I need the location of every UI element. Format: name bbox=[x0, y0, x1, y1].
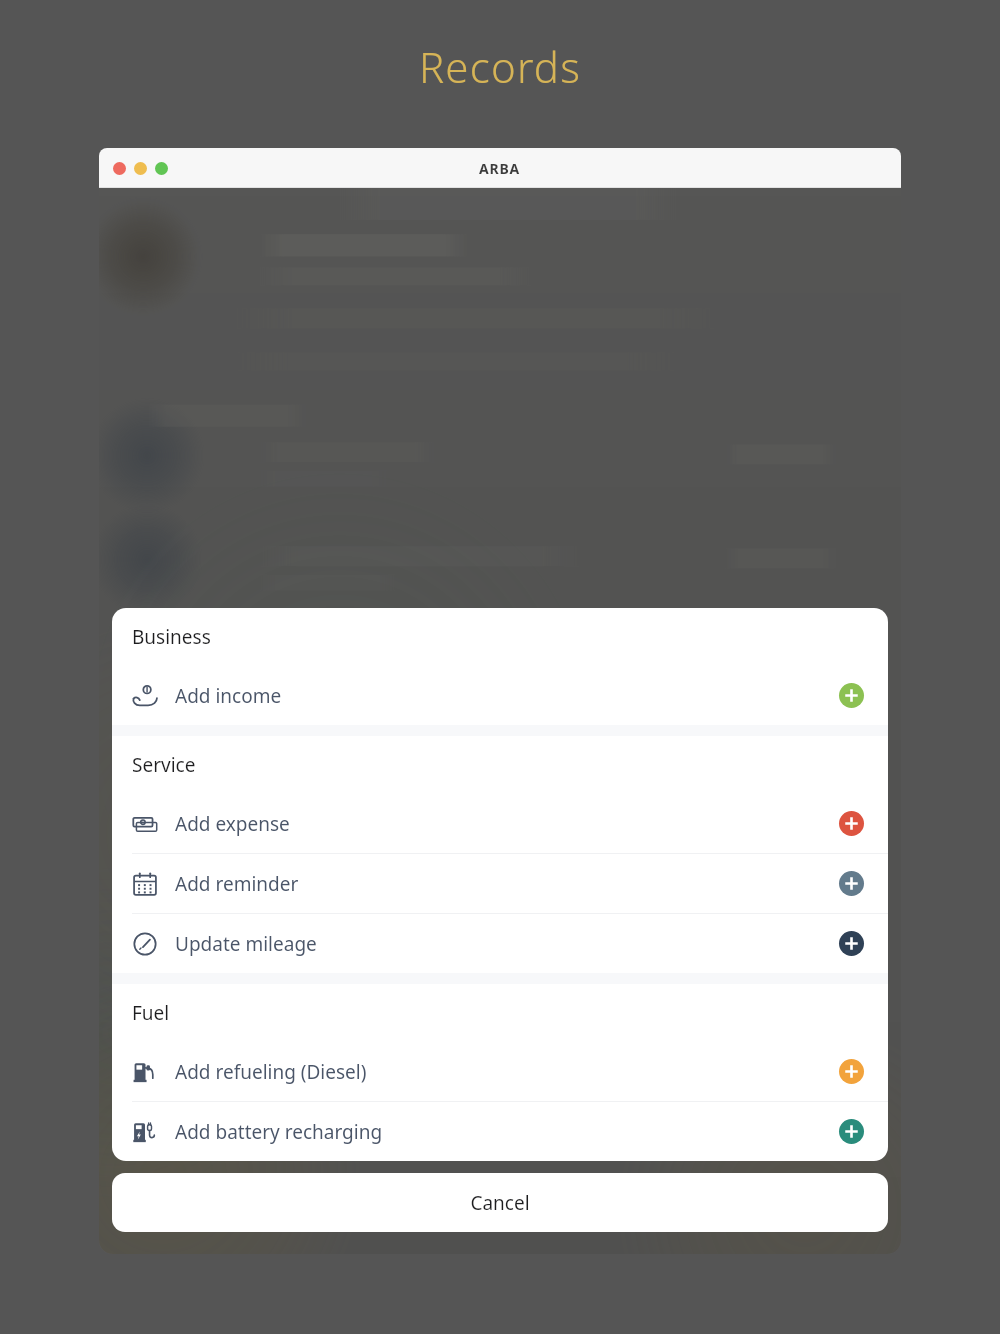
button[interactable]: Cancel bbox=[112, 1173, 888, 1232]
button[interactable]: Add refueling (Diesel) bbox=[112, 1042, 888, 1101]
button[interactable]: Add income bbox=[112, 666, 888, 725]
staticText: Records bbox=[419, 38, 582, 95]
staticText: Service bbox=[132, 752, 196, 778]
button[interactable]: Close bbox=[113, 162, 126, 175]
staticText: Add battery recharging bbox=[175, 1119, 383, 1145]
staticText: Add refueling (Diesel) bbox=[175, 1059, 367, 1085]
staticText: Add expense bbox=[175, 811, 290, 837]
button[interactable]: Add expense bbox=[112, 794, 888, 853]
staticText: Business bbox=[132, 624, 211, 650]
staticText: Fuel bbox=[132, 1000, 170, 1026]
staticText: Cancel bbox=[470, 1190, 530, 1216]
staticText: ARBA bbox=[479, 159, 521, 178]
button[interactable]: Add battery recharging bbox=[112, 1102, 888, 1161]
staticText: Update mileage bbox=[175, 931, 317, 957]
button[interactable]: Maximize bbox=[155, 162, 168, 175]
staticText: Add reminder bbox=[175, 871, 299, 897]
button[interactable]: Update mileage bbox=[112, 914, 888, 973]
staticText: Add income bbox=[175, 683, 282, 709]
button[interactable]: Add reminder bbox=[112, 854, 888, 913]
button[interactable]: Minimize bbox=[134, 162, 147, 175]
